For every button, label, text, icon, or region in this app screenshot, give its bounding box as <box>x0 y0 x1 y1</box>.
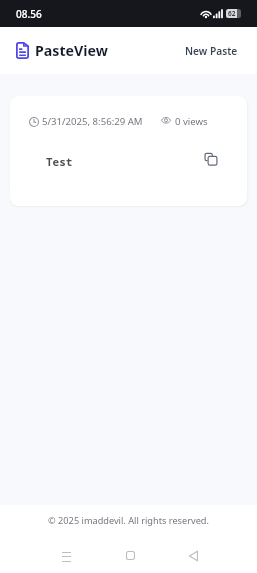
staticText: © 2025 imaddevil. All rights reserved. <box>48 514 209 527</box>
staticText: PasteView <box>35 41 108 60</box>
button[interactable]: Copy <box>203 151 219 167</box>
button[interactable]: Back <box>176 538 210 572</box>
staticText: 5/31/2025, 8:56:29 AM <box>42 115 143 128</box>
button[interactable]: 5/31/2025, 8:56:29 AM <box>10 96 247 206</box>
staticText: New Paste <box>185 44 238 58</box>
button[interactable]: Home <box>113 538 147 572</box>
button[interactable]: Recent apps <box>49 538 83 572</box>
button[interactable]: New Paste <box>166 34 257 68</box>
staticText: 08.56 <box>16 7 42 21</box>
staticText: Test <box>46 154 73 169</box>
staticText: 0 views <box>175 115 208 128</box>
staticText: 62 <box>228 9 236 18</box>
